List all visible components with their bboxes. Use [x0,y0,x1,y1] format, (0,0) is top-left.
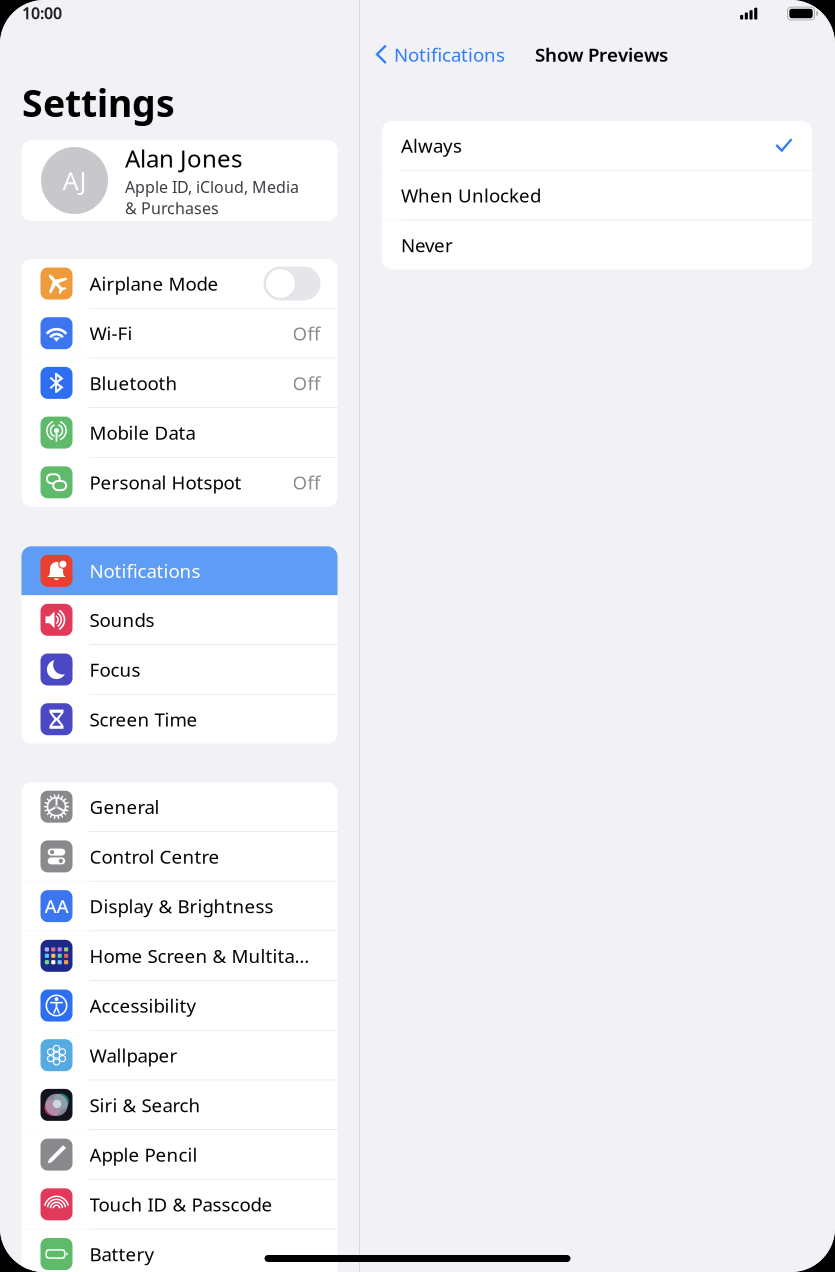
button[interactable]: Wallpaper [21,1031,337,1080]
staticText: Accessibility [89,993,196,1018]
button[interactable]: Accessibility [21,981,337,1030]
button[interactable]: Home Screen & Multitas... [21,931,337,980]
button[interactable]: Sounds [21,595,337,644]
button[interactable]: Wi-Fi [21,309,337,358]
staticText: Personal Hotspot [89,470,241,495]
button[interactable]: Touch ID & Passcode [21,1180,337,1229]
staticText: 10:00 [22,2,62,24]
staticText: Focus [89,657,140,682]
staticText: Home Screen & Multitas... [89,943,316,968]
button[interactable]: Focus [21,645,337,694]
staticText: Always [401,133,462,158]
button[interactable]: Airplane Mode [21,259,337,308]
button[interactable]: Notifications [374,36,505,73]
button[interactable]: Bluetooth [21,358,337,407]
button[interactable]: Apple Pencil [21,1130,337,1179]
staticText: & Purchases [125,197,219,219]
staticText: Screen Time [89,707,197,732]
button[interactable]: Battery [21,1229,337,1272]
button[interactable]: General [21,782,337,831]
staticText: Display & Brightness [89,894,273,918]
staticText: Touch ID & Passcode [89,1192,272,1217]
staticText: Never [401,232,453,257]
button[interactable]: Always [382,121,812,170]
staticText: Notifications [394,42,505,67]
staticText: Control Centre [89,844,219,869]
staticText: Airplane Mode [89,271,218,296]
staticText: AA [44,894,68,918]
button[interactable]: Control Centre [21,832,337,881]
staticText: AJ [62,164,86,197]
button[interactable]: Notifications [21,546,337,595]
staticText: General [89,794,159,819]
button[interactable]: Mobile Data [21,408,337,457]
staticText: Alan Jones [125,142,242,174]
button[interactable]: When Unlocked [382,171,812,220]
staticText: Apple ID, iCloud, Media [125,176,299,197]
button[interactable]: AJ [21,140,337,221]
button[interactable]: Personal Hotspot [21,458,337,507]
button[interactable]: Never [382,220,812,269]
staticText: Mobile Data [89,420,195,445]
button[interactable]: Siri & Search [21,1080,337,1129]
staticText: Show Previews [535,42,668,67]
staticText: Battery [89,1242,154,1266]
staticText: Off [292,370,320,395]
staticText: Bluetooth [89,370,177,395]
staticText: Apple Pencil [89,1142,197,1167]
staticText: Off [292,321,320,346]
staticText: Wi-Fi [89,321,132,346]
button[interactable]: Screen Time [21,695,337,744]
staticText: Settings [22,78,175,127]
staticText: Notifications [89,558,200,583]
button[interactable]: AA [21,882,337,931]
staticText: When Unlocked [401,183,541,208]
staticText: Sounds [89,607,154,632]
staticText: Off [292,470,320,495]
staticText: Wallpaper [89,1043,177,1068]
staticText: Siri & Search [89,1092,200,1117]
